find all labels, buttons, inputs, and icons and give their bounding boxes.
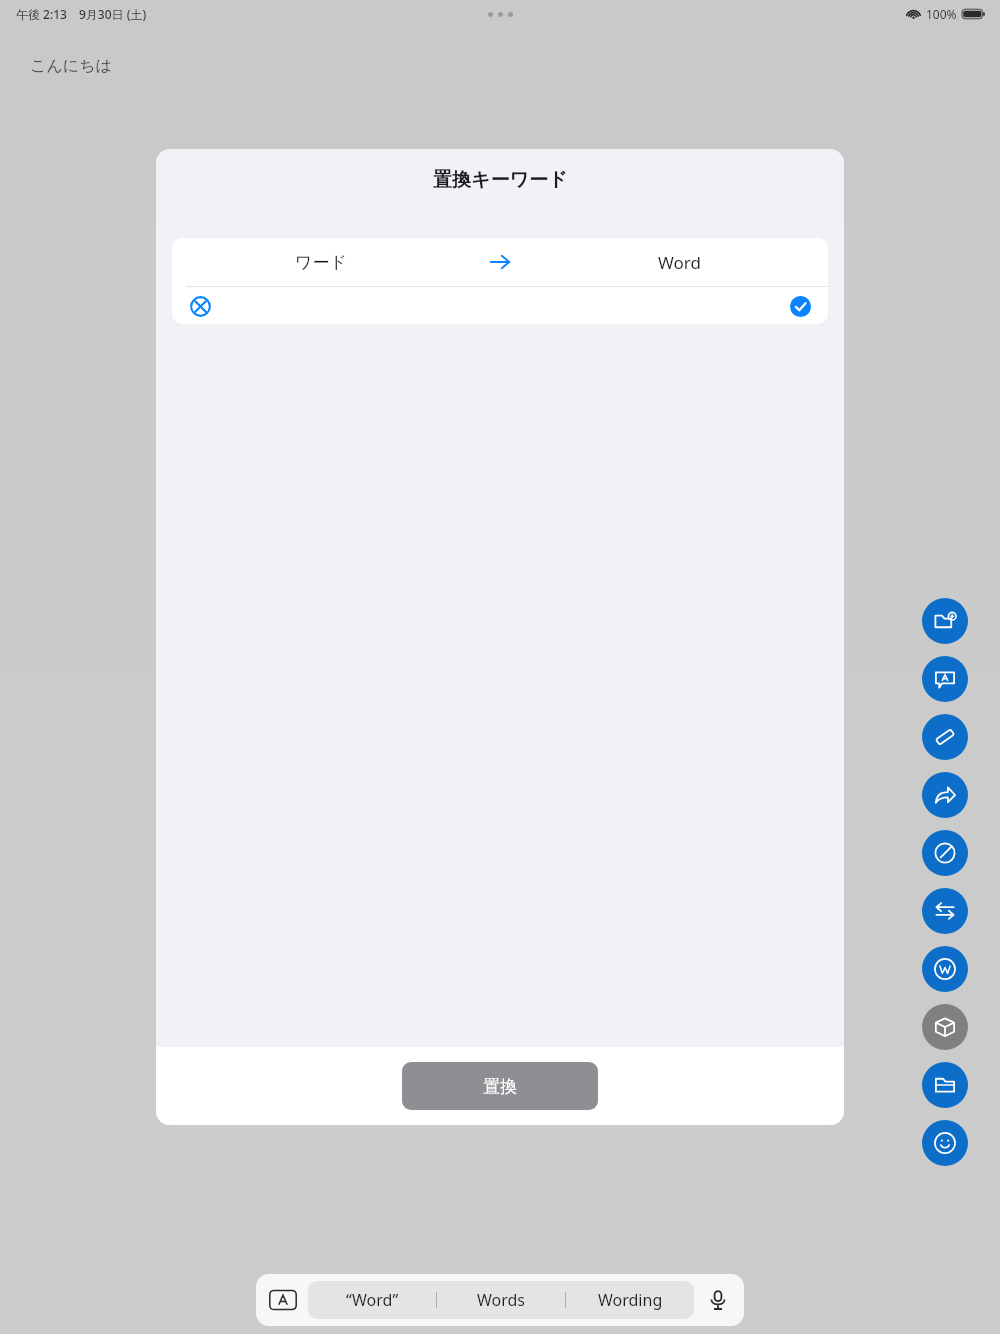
button[interactable]: Emoji (922, 1120, 968, 1166)
staticText: “Word” (346, 1289, 399, 1311)
button[interactable]: Eraser (922, 714, 968, 760)
button[interactable]: Text bubble (922, 656, 968, 702)
button[interactable]: “Word” (308, 1281, 436, 1319)
staticText: Wording (598, 1289, 663, 1311)
button[interactable]: Swap (922, 888, 968, 934)
button[interactable]: Share (922, 772, 968, 818)
button[interactable]: Clear (184, 290, 216, 322)
staticText: ワード (295, 252, 347, 273)
button[interactable]: ワード (172, 238, 828, 286)
button[interactable]: Words (437, 1281, 565, 1319)
button[interactable]: New folder (922, 598, 968, 644)
staticText: 置換 (483, 1076, 517, 1097)
staticText: こんにちは (30, 56, 112, 76)
button[interactable]: Word count (922, 946, 968, 992)
button[interactable]: 置換 (402, 1062, 598, 1110)
staticText: Words (477, 1289, 526, 1311)
staticText: 置換キーワード (433, 168, 568, 192)
staticText: Word (658, 251, 701, 274)
button[interactable]: Package (922, 1004, 968, 1050)
button[interactable]: Folder (922, 1062, 968, 1108)
staticText: 100% (926, 6, 957, 22)
staticText: 午後 2:13 9月30日 (土) (16, 6, 147, 22)
button[interactable]: Dictate (702, 1284, 734, 1316)
button[interactable]: Input mode (266, 1286, 300, 1314)
button[interactable]: Confirm (784, 290, 816, 322)
button[interactable]: Wording (566, 1281, 694, 1319)
button[interactable]: Edit (922, 830, 968, 876)
